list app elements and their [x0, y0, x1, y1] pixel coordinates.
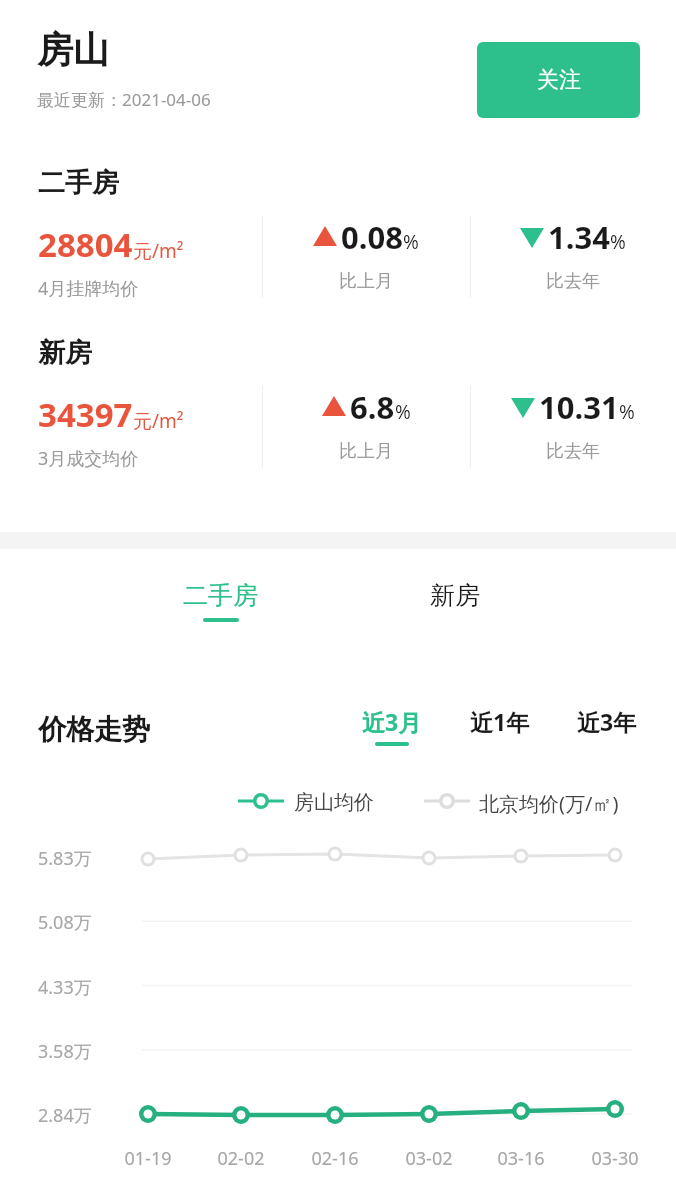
staticText: 5.08万 [38, 910, 124, 935]
staticText: 近1年 [470, 706, 530, 737]
staticText: 二手房 [38, 166, 119, 200]
staticText: 二手房 [183, 580, 258, 611]
button[interactable]: 二手房 [150, 580, 290, 642]
staticText: 10.31 [539, 386, 619, 428]
staticText: % [610, 229, 626, 255]
staticText: 4.33万 [38, 975, 124, 1000]
staticText: 4月挂牌均价 [38, 276, 139, 301]
staticText: 比去年 [546, 440, 600, 463]
staticText: 关注 [537, 66, 581, 94]
staticText: 元/m² [133, 408, 184, 434]
button[interactable]: 关注 [477, 42, 640, 118]
staticText: 1.34 [548, 216, 610, 258]
staticText: 01-19 [103, 1146, 193, 1171]
staticText: % [403, 229, 419, 255]
staticText: 03-30 [570, 1146, 660, 1171]
staticText: 最近更新：2021-04-06 [37, 88, 211, 111]
staticText: 近3年 [577, 706, 637, 737]
button[interactable]: 近1年 [464, 706, 536, 754]
button[interactable]: 新房 [385, 580, 525, 642]
staticText: 北京均价(万/㎡) [479, 790, 619, 817]
staticText: 02-02 [196, 1146, 286, 1171]
staticText: 比上月 [339, 440, 393, 463]
staticText: 比上月 [339, 270, 393, 293]
button[interactable]: 近3月 [356, 706, 428, 754]
staticText: 5.83万 [38, 846, 124, 871]
staticText: 03-02 [384, 1146, 474, 1171]
staticText: 6.8 [350, 386, 395, 428]
staticText: 比去年 [546, 270, 600, 293]
staticText: 03-16 [476, 1146, 566, 1171]
staticText: 房山均价 [294, 790, 374, 815]
staticText: 价格走势 [38, 712, 150, 747]
staticText: 02-16 [290, 1146, 380, 1171]
staticText: 元/m² [133, 238, 184, 264]
staticText: 28804 [38, 222, 133, 267]
staticText: % [395, 399, 411, 425]
staticText: 新房 [38, 336, 92, 370]
staticText: 房山 [37, 27, 109, 72]
staticText: % [619, 399, 635, 425]
staticText: 新房 [430, 580, 480, 611]
staticText: 3月成交均价 [38, 446, 139, 471]
staticText: 34397 [38, 392, 133, 437]
staticText: 0.08 [341, 216, 403, 258]
staticText: 2.84万 [38, 1103, 124, 1128]
button[interactable]: 近3年 [571, 706, 643, 754]
staticText: 3.58万 [38, 1039, 124, 1064]
staticText: 近3月 [362, 706, 422, 737]
